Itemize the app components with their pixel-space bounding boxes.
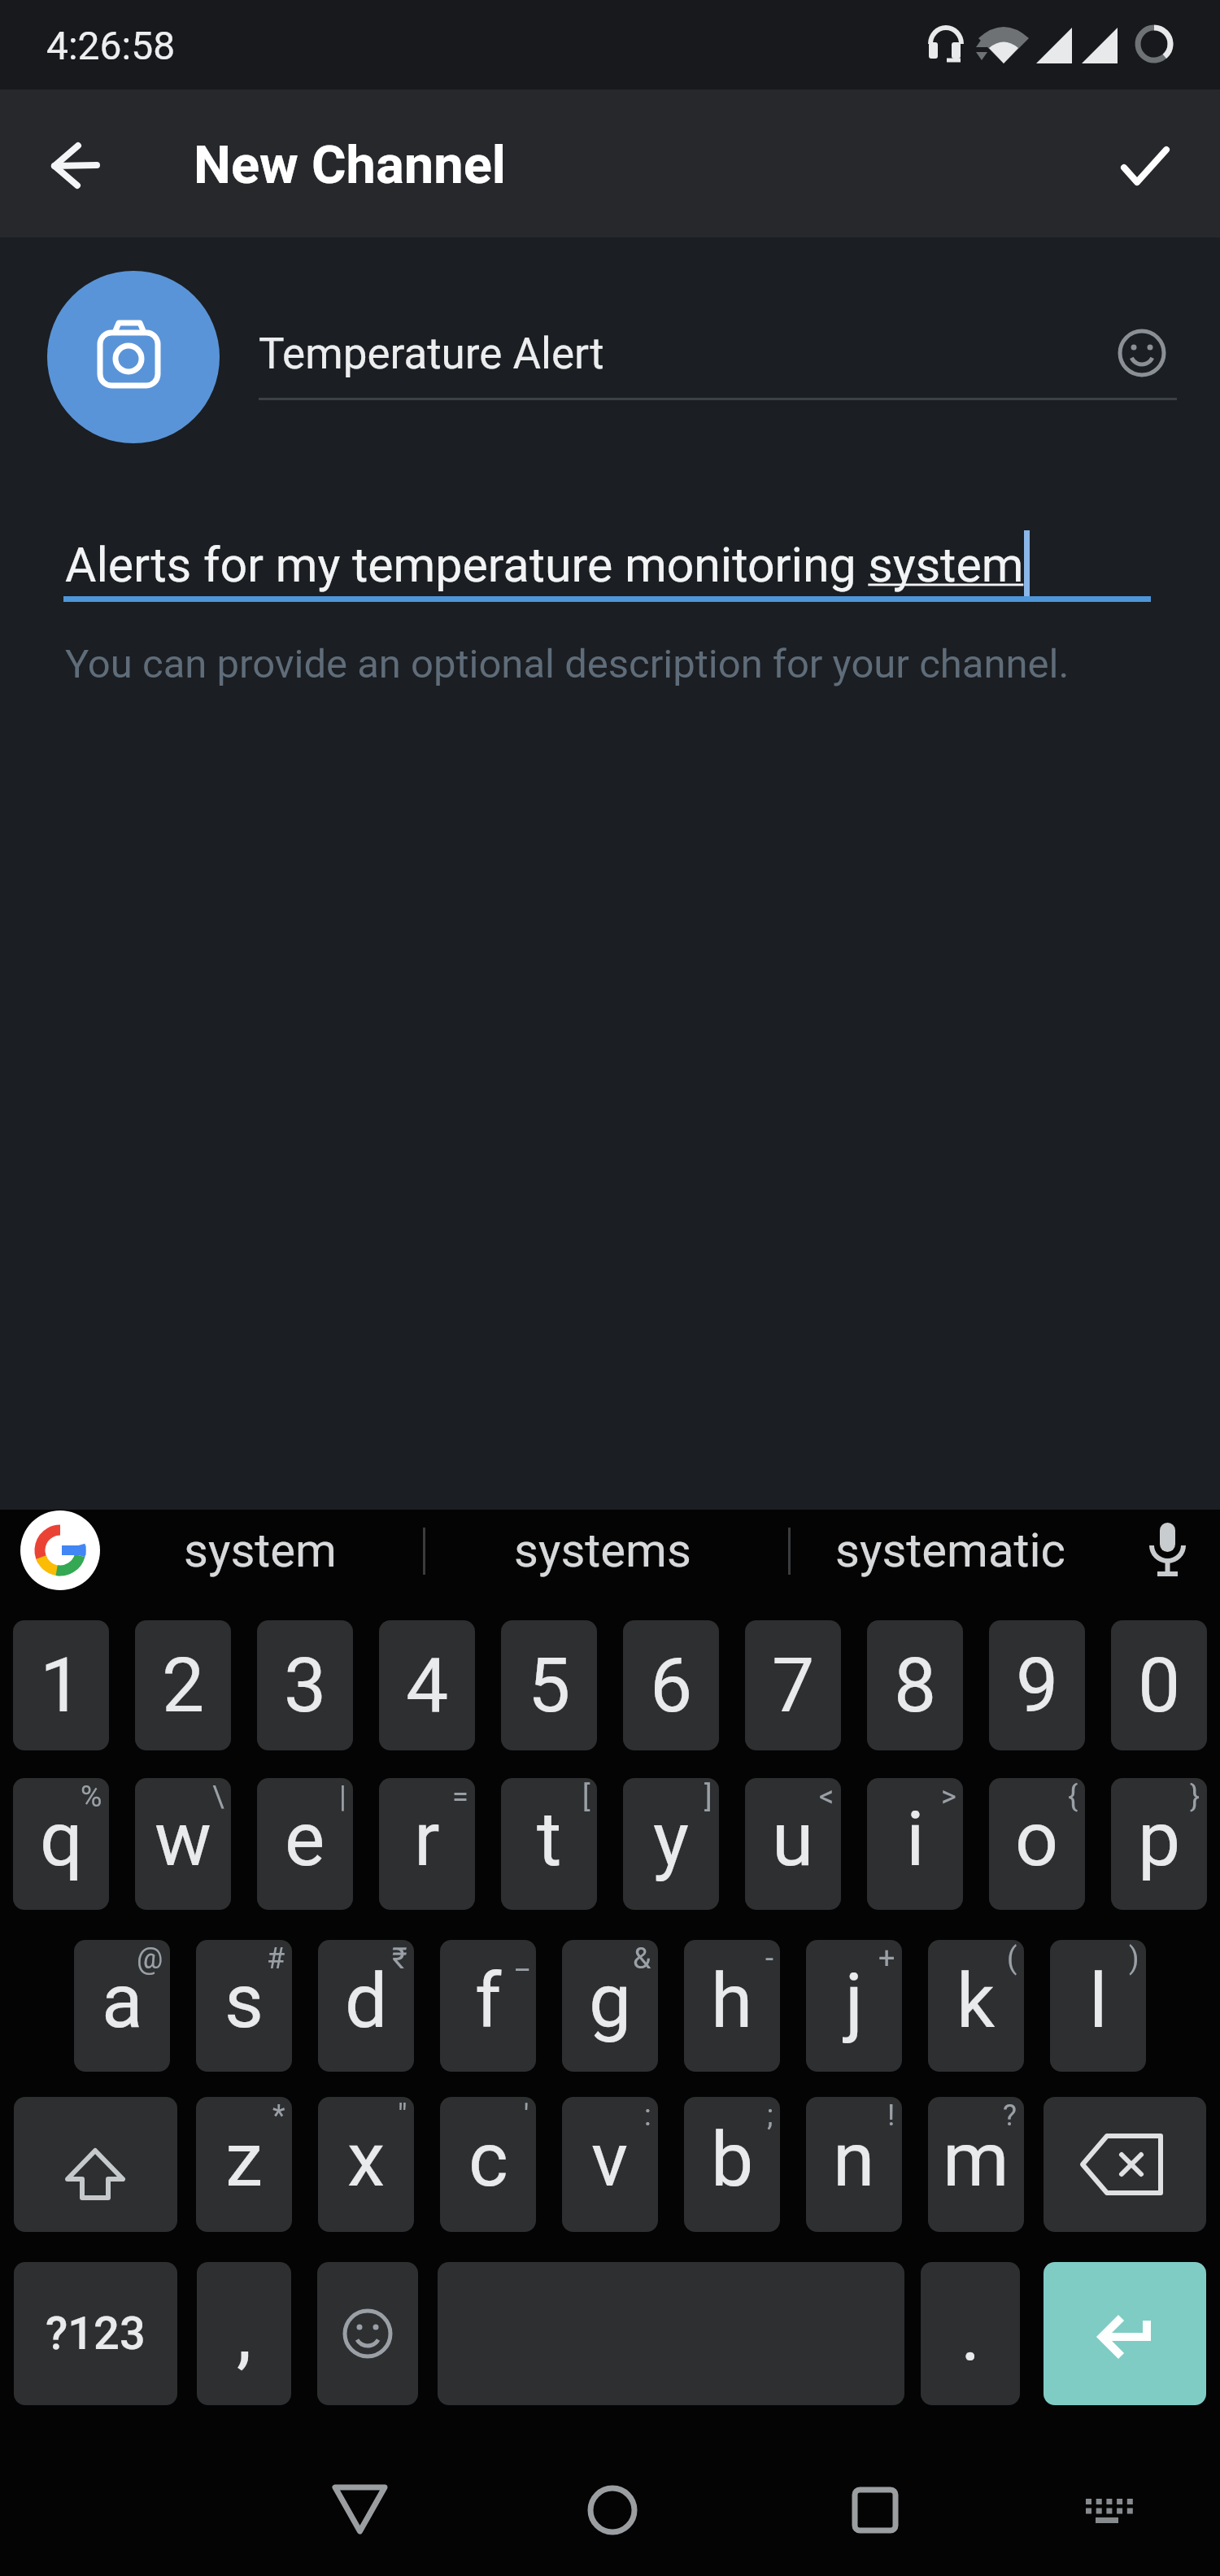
button[interactable]: v [562,2097,658,2232]
staticText: \ [212,1780,224,1814]
staticText: n [833,2116,875,2204]
button[interactable]: 4 [379,1620,475,1750]
staticText: i [906,1795,925,1884]
staticText: 3 [284,1641,327,1730]
button[interactable]: h [684,1940,780,2072]
button[interactable]: l [1050,1940,1146,2072]
button[interactable]: s [196,1940,292,2072]
button[interactable] [20,1510,100,1590]
staticText: * [272,2099,285,2133]
button[interactable]: b [684,2097,780,2232]
button[interactable] [317,2262,418,2405]
button[interactable] [14,2097,177,2232]
button[interactable]: . [921,2262,1020,2405]
button[interactable]: m [928,2097,1024,2232]
staticText: 2 [162,1641,205,1730]
staticText: ' [524,2099,529,2133]
button[interactable] [1044,2097,1206,2232]
button[interactable] [438,2262,904,2405]
staticText: z [225,2116,264,2204]
button[interactable]: 5 [501,1620,597,1750]
button[interactable]: system [122,1510,399,1591]
button[interactable]: c [440,2097,536,2232]
button[interactable]: g [562,1940,658,2072]
staticText: { [1068,1780,1078,1814]
staticText: , [237,2290,252,2378]
staticText: ? [1003,2099,1017,2133]
button[interactable]: 2 [135,1620,231,1750]
staticText: " [398,2099,407,2133]
staticText: New Channel [194,134,507,196]
button[interactable]: z [196,2097,292,2232]
button[interactable]: r [379,1778,475,1910]
button[interactable]: 9 [989,1620,1085,1750]
button[interactable]: e [257,1778,353,1910]
staticText: r [414,1795,440,1884]
staticText: c [468,2116,508,2204]
staticText: # [267,1942,285,1976]
staticText: m [943,2116,1009,2204]
staticText: 7 [772,1641,815,1730]
button[interactable]: 6 [623,1620,719,1750]
staticText: - [765,1942,773,1976]
staticText: @ [137,1942,163,1976]
button[interactable]: 3 [257,1620,353,1750]
button[interactable] [47,271,220,443]
button[interactable]: t [501,1778,597,1910]
staticText: & [633,1942,651,1976]
staticText: > [941,1780,956,1814]
staticText: h [711,1957,753,2046]
staticText: [ [582,1780,590,1814]
button[interactable]: j [806,1940,902,2072]
staticText: f [475,1957,502,2046]
button[interactable]: o [989,1778,1085,1910]
button[interactable]: d [318,1940,414,2072]
button[interactable]: , [197,2262,291,2405]
button[interactable]: systems [464,1510,741,1591]
button[interactable]: q [13,1778,109,1910]
staticText: : [644,2099,651,2133]
button[interactable]: 0 [1111,1620,1207,1750]
button[interactable]: i [867,1778,963,1910]
staticText: u [772,1795,814,1884]
button[interactable] [25,115,126,216]
button[interactable]: x [318,2097,414,2232]
staticText: 0 [1138,1641,1181,1730]
staticText: t [537,1795,562,1884]
button[interactable] [1044,2262,1206,2405]
staticText: ! [887,2099,895,2133]
button[interactable]: 8 [867,1620,963,1750]
staticText: ) [1129,1942,1139,1976]
button[interactable]: n [806,2097,902,2232]
staticText: 8 [894,1641,937,1730]
staticText: v [591,2116,629,2204]
button[interactable]: systematic [812,1510,1088,1591]
button[interactable]: y [623,1778,719,1910]
staticText: ₹ [392,1942,407,1976]
staticText: l [1089,1957,1108,2046]
button[interactable] [1095,115,1196,216]
button[interactable]: w [135,1778,231,1910]
staticText: w [155,1795,211,1884]
staticText: a [102,1957,143,2046]
button[interactable]: 7 [745,1620,841,1750]
staticText: x [347,2116,386,2204]
button[interactable]: u [745,1778,841,1910]
button[interactable]: a [74,1940,170,2072]
staticText: _ [516,1942,529,1976]
button[interactable]: f [440,1940,536,2072]
button[interactable]: ?123 [14,2262,177,2405]
staticText: ] [704,1780,712,1814]
staticText: e [285,1795,325,1884]
staticText: o [1015,1795,1059,1884]
staticText: systems [514,1523,691,1578]
button[interactable]: k [928,1940,1024,2072]
staticText: < [819,1780,834,1814]
staticText: p [1138,1795,1181,1884]
staticText: + [878,1942,895,1976]
staticText: 6 [650,1641,693,1730]
button[interactable]: p [1111,1778,1207,1910]
button[interactable] [1126,1510,1208,1591]
button[interactable]: 1 [13,1620,109,1750]
staticText: ; [767,2099,773,2133]
